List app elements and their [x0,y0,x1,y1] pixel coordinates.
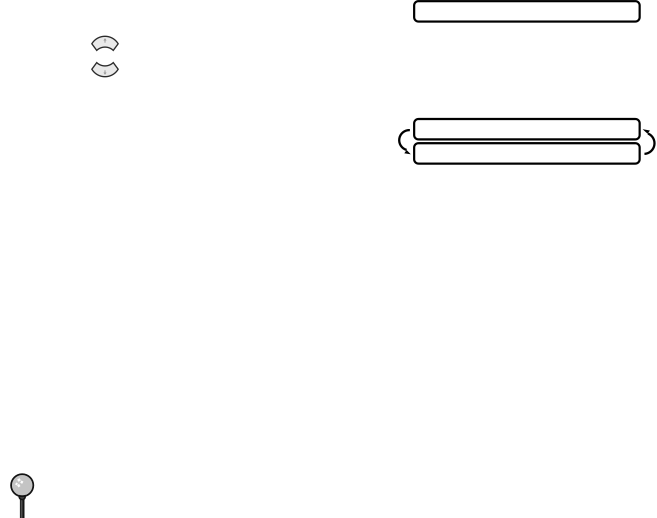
button[interactable]: Row [414,1,640,22]
button[interactable]: Search [5,467,39,518]
button[interactable]: Lower row [414,143,640,164]
button[interactable]: Scroll down [89,60,121,80]
button[interactable]: Scroll up [89,33,121,53]
button[interactable]: Upper row [414,119,640,139]
